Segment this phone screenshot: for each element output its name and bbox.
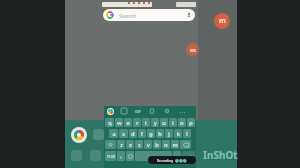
button[interactable]: c xyxy=(135,140,143,149)
staticText: i xyxy=(172,119,174,126)
staticText: . xyxy=(176,153,178,160)
staticText: GIF xyxy=(135,109,141,114)
button[interactable]: o xyxy=(178,118,186,127)
staticText: Search xyxy=(119,12,137,19)
button[interactable]: ?123 xyxy=(105,151,116,161)
staticText: m xyxy=(172,141,178,148)
button[interactable]: m xyxy=(171,140,179,149)
staticText: o xyxy=(180,119,184,126)
button[interactable]: s xyxy=(119,129,128,138)
staticText: Recording xyxy=(157,158,174,163)
staticText: r xyxy=(136,119,139,126)
button[interactable]: d xyxy=(129,129,137,138)
staticText: z xyxy=(120,141,123,148)
button[interactable]: w xyxy=(115,118,123,127)
button[interactable]: z xyxy=(117,140,125,149)
staticText: s xyxy=(122,130,125,137)
button[interactable]: e xyxy=(124,118,132,127)
button[interactable]: k xyxy=(174,129,182,138)
staticText: k xyxy=(177,130,180,137)
button[interactable]: h xyxy=(156,129,164,138)
button[interactable]: . xyxy=(173,151,181,161)
staticText: , xyxy=(120,153,122,160)
staticText: b xyxy=(155,141,159,148)
staticText: v xyxy=(147,141,150,148)
button[interactable]: j xyxy=(165,129,173,138)
staticText: m xyxy=(190,46,196,54)
button[interactable]: Shift xyxy=(105,140,116,149)
button[interactable]: g xyxy=(147,129,155,138)
button[interactable]: Voice search xyxy=(185,11,193,19)
button[interactable]: l xyxy=(183,129,191,138)
button[interactable]: q xyxy=(105,118,114,127)
staticText: x xyxy=(129,141,132,148)
staticText: j xyxy=(168,130,170,137)
button[interactable]: Emoji xyxy=(126,151,134,161)
button[interactable]: r xyxy=(133,118,141,127)
staticText: g xyxy=(149,130,153,137)
button[interactable]: t xyxy=(142,118,150,127)
staticText: ●●● xyxy=(175,158,187,163)
button[interactable]: Backspace xyxy=(180,140,191,149)
button[interactable]: Settings xyxy=(163,107,171,115)
button[interactable]: x xyxy=(126,140,134,149)
staticText: ⋯ xyxy=(179,108,185,115)
button[interactable]: a xyxy=(109,129,118,138)
staticText: c xyxy=(138,141,141,148)
button[interactable]: Clipboard xyxy=(148,107,156,115)
staticText: e xyxy=(126,119,130,126)
staticText: n xyxy=(164,141,168,148)
button[interactable]: i xyxy=(169,118,177,127)
staticText: y xyxy=(154,119,157,126)
button[interactable]: b xyxy=(153,140,161,149)
staticText: u xyxy=(162,119,166,126)
staticText: InShOt xyxy=(203,148,238,162)
button[interactable]: Google Assistant xyxy=(107,108,114,115)
staticText: m xyxy=(219,16,226,26)
button[interactable]: , xyxy=(117,151,125,161)
staticText: a xyxy=(112,130,116,137)
staticText: w xyxy=(117,119,122,126)
staticText: q xyxy=(108,119,112,126)
button[interactable]: Enter xyxy=(182,151,195,161)
button[interactable]: v xyxy=(144,140,152,149)
other: Google xyxy=(106,11,114,19)
staticText: h xyxy=(158,130,162,137)
button[interactable] xyxy=(135,151,172,161)
staticText: d xyxy=(131,130,135,137)
button[interactable]: Google xyxy=(103,9,195,21)
staticText: l xyxy=(186,130,188,137)
staticText: ?123 xyxy=(107,154,115,159)
staticText: f xyxy=(141,130,143,137)
button[interactable]: u xyxy=(160,118,168,127)
button[interactable]: y xyxy=(151,118,159,127)
button[interactable]: n xyxy=(162,140,170,149)
button[interactable]: p xyxy=(187,118,195,127)
button[interactable]: Stickers xyxy=(120,107,128,115)
staticText: p xyxy=(189,119,193,126)
staticText: t xyxy=(145,119,147,126)
button[interactable]: f xyxy=(138,129,146,138)
